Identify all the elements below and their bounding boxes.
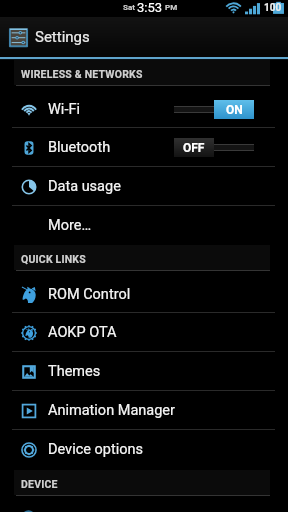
button[interactable]: Animation Manager <box>0 391 288 429</box>
staticText: Device options <box>48 441 143 458</box>
staticText: Animation Manager <box>48 402 175 419</box>
staticText: OFF <box>183 141 205 155</box>
staticText: Bluetooth <box>48 139 111 156</box>
staticText: PM <box>165 3 178 12</box>
staticText: DEVICE <box>21 478 58 490</box>
button[interactable]: More… <box>0 206 288 244</box>
button[interactable]: ROM Control <box>0 271 288 312</box>
button[interactable]: Themes <box>0 352 288 390</box>
button[interactable]: AOKP OTA <box>0 313 288 351</box>
button[interactable]: Wi-Fi <box>0 86 288 127</box>
staticText: Sat <box>123 3 135 12</box>
staticText: Data usage <box>48 178 121 195</box>
staticText: 100 <box>264 2 282 14</box>
staticText: 3:53 <box>137 0 163 15</box>
button[interactable]: OFF <box>174 137 254 157</box>
staticText: WIRELESS & NETWORKS <box>21 68 143 80</box>
button[interactable]: Device options <box>0 430 288 469</box>
staticText: Settings <box>35 28 90 46</box>
button[interactable]: Bluetooth <box>0 128 288 166</box>
button[interactable]: ON <box>174 99 254 119</box>
staticText: Wi-Fi <box>48 101 80 118</box>
staticText: ON <box>226 103 243 117</box>
staticText: AOKP OTA <box>48 324 117 341</box>
button[interactable]: Data usage <box>0 167 288 205</box>
staticText: More… <box>48 217 92 234</box>
staticText: QUICK LINKS <box>21 253 86 265</box>
staticText: Themes <box>48 363 101 380</box>
staticText: ROM Control <box>48 286 131 303</box>
